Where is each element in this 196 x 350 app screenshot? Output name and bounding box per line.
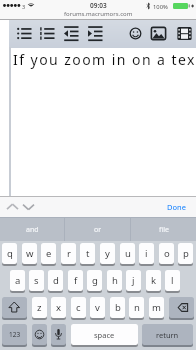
button[interactable]: f [68,270,83,293]
button[interactable]: u [120,243,135,266]
staticText: f [74,274,78,287]
button[interactable] [125,21,146,46]
staticText: h [112,274,118,287]
button[interactable]: space [71,324,138,347]
staticText: p [183,247,189,260]
staticText: o [164,247,170,260]
staticText: or [94,225,102,235]
button[interactable]: x [51,297,66,320]
staticText: d [53,274,59,287]
staticText: q [7,247,13,260]
button[interactable]: d [48,270,63,293]
staticText: v [95,301,100,314]
button[interactable]: a [10,270,25,293]
button[interactable]: e [41,243,56,266]
staticText: 3 [22,3,26,10]
staticText: u [125,247,131,260]
button[interactable]: i [139,243,154,266]
button[interactable]: Done [160,198,192,215]
button[interactable] [20,200,37,213]
button[interactable]: t [80,243,95,266]
staticText: 100% [153,3,168,11]
button[interactable]: v [90,297,105,320]
staticText: r [67,247,71,260]
button[interactable]: and [0,218,64,241]
button[interactable]: forums.macrumors.com [64,10,133,18]
staticText: space [94,330,115,340]
button[interactable]: g [87,270,102,293]
staticText: and [26,225,39,235]
button[interactable] [2,297,27,320]
staticText: l [171,274,174,287]
button[interactable] [148,21,169,46]
button[interactable] [169,297,194,320]
button[interactable]: h [107,270,122,293]
staticText: t [86,247,90,260]
staticText: j [132,274,135,287]
button[interactable]: p [178,243,193,266]
button[interactable]: c [71,297,86,320]
staticText: w [26,247,34,260]
button[interactable]: r [61,243,76,266]
staticText: k [151,274,157,287]
staticText: i [145,247,148,260]
button[interactable]: q [2,243,17,266]
button[interactable] [85,21,106,46]
button[interactable]: 123 [2,324,27,347]
staticText: g [92,274,98,287]
staticText: 123 [9,330,21,339]
button[interactable] [174,21,195,46]
staticText: b [115,301,121,314]
button[interactable] [51,324,66,347]
button[interactable]: n [129,297,144,320]
button[interactable]: l [165,270,180,293]
staticText: Done [167,202,186,212]
button[interactable]: b [110,297,125,320]
button[interactable]: return [142,324,193,347]
button[interactable] [14,21,35,46]
staticText: x [56,301,62,314]
staticText: y [105,247,110,260]
button[interactable]: 09:03 [85,1,111,10]
button[interactable] [61,21,82,46]
button[interactable] [37,21,58,46]
staticText: return [156,330,179,340]
button[interactable]: o [159,243,174,266]
staticText: a [15,274,21,287]
button[interactable]: z [32,297,47,320]
staticText: n [134,301,140,314]
button[interactable]: m [149,297,164,320]
button[interactable]: file [131,218,196,241]
staticText: z [37,301,42,314]
staticText: If you zoom in on a tex [13,50,196,69]
staticText: 09:03 [90,1,107,10]
staticText: s [34,274,39,287]
staticText: file [159,225,169,235]
button[interactable]: k [146,270,161,293]
staticText: m [152,301,161,314]
button[interactable]: or [65,218,130,241]
button[interactable]: s [29,270,44,293]
button[interactable] [32,324,47,347]
staticText: e [46,247,52,260]
button[interactable]: w [22,243,37,266]
button[interactable]: y [100,243,115,266]
button[interactable]: j [126,270,141,293]
button[interactable] [4,200,21,213]
staticText: c [76,301,81,314]
